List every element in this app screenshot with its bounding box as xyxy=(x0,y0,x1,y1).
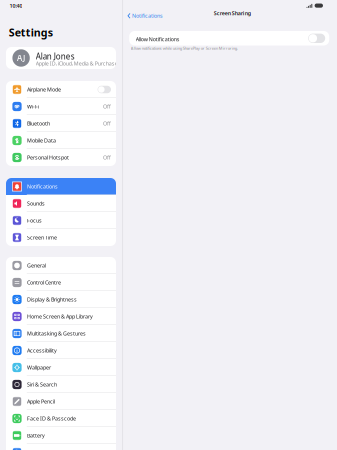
staticText: Apple ID, iCloud, Media & Purchases xyxy=(36,60,121,67)
button[interactable]: Display & Brightness xyxy=(6,291,116,308)
staticText: General xyxy=(27,262,46,269)
button[interactable]: Sounds xyxy=(6,195,116,212)
staticText: Wi-Fi xyxy=(27,103,39,110)
staticText: Notifications xyxy=(27,183,58,190)
button[interactable]: Wallpaper xyxy=(6,359,116,376)
staticText: Wallpaper xyxy=(27,364,51,371)
staticText: Off xyxy=(103,103,111,110)
staticText: Display & Brightness xyxy=(27,296,77,303)
button[interactable]: Notifications xyxy=(6,178,116,195)
button[interactable]: Bluetooth xyxy=(6,115,116,132)
staticText: Siri & Search xyxy=(27,381,57,388)
button[interactable]: Allow Notifications xyxy=(129,31,329,45)
staticText: Control Centre xyxy=(27,279,61,286)
staticText: Notifications xyxy=(132,12,163,19)
button[interactable]: Control Centre xyxy=(6,274,116,291)
button[interactable]: Privacy & Security xyxy=(6,444,116,450)
button[interactable]: Focus xyxy=(6,212,116,229)
button[interactable]: Mobile Data xyxy=(6,132,116,149)
button[interactable]: Siri & Search xyxy=(6,376,116,393)
staticText: Airplane Mode xyxy=(27,86,61,93)
button[interactable]: Screen Time xyxy=(6,229,116,246)
staticText: Off xyxy=(103,120,111,127)
staticText: Personal Hotspot xyxy=(27,154,69,161)
button[interactable]: Airplane Mode xyxy=(6,81,116,98)
button[interactable]: Home Screen & App Library xyxy=(6,308,116,325)
button[interactable]: Notifications xyxy=(123,10,166,22)
staticText: Allow Notifications xyxy=(136,36,180,43)
staticText: Home Screen & App Library xyxy=(27,313,93,320)
staticText: Accessibility xyxy=(27,347,57,354)
staticText: 10:40 xyxy=(9,2,22,9)
staticText: Off xyxy=(103,154,111,161)
staticText: Multitasking & Gestures xyxy=(27,330,86,337)
button[interactable]: Apple Pencil xyxy=(6,393,116,410)
button[interactable]: Accessibility xyxy=(6,342,116,359)
button[interactable]: Battery xyxy=(6,427,116,444)
staticText: AJ xyxy=(17,53,25,63)
button[interactable]: Face ID & Passcode xyxy=(6,410,116,427)
staticText: Focus xyxy=(27,217,42,224)
button[interactable]: Personal Hotspot xyxy=(6,149,116,166)
staticText: Mobile Data xyxy=(27,137,56,144)
button[interactable]: Multitasking & Gestures xyxy=(6,325,116,342)
staticText: Sounds xyxy=(27,200,45,207)
staticText: Allow notifications while using SharePla… xyxy=(131,46,238,51)
staticText: Screen Time xyxy=(27,234,57,241)
staticText: Battery xyxy=(27,432,45,439)
button[interactable]: General xyxy=(6,257,116,274)
staticText: Screen Sharing xyxy=(214,10,251,17)
staticText: Settings xyxy=(9,25,53,39)
staticText: Face ID & Passcode xyxy=(27,415,76,422)
staticText: Alan Jones xyxy=(36,51,75,62)
staticText: Apple Pencil xyxy=(27,398,55,405)
staticText: Bluetooth xyxy=(27,120,50,127)
button[interactable]: AJ xyxy=(6,47,116,69)
button[interactable]: Wi-Fi xyxy=(6,98,116,115)
